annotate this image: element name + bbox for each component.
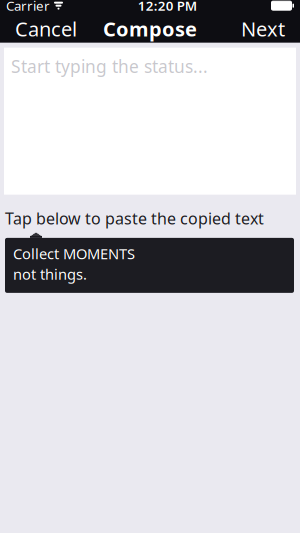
button[interactable]: Cancel — [5, 10, 87, 47]
staticText: Start typing the status... — [11, 55, 208, 78]
staticText: Next — [241, 15, 285, 42]
button[interactable]: Next — [231, 10, 295, 47]
staticText: Collect MOMENTS — [13, 244, 135, 263]
staticText: Carrier — [6, 0, 50, 14]
staticText: 12:20 PM — [138, 0, 197, 14]
staticText: Compose — [103, 15, 197, 42]
staticText: not things. — [13, 264, 87, 284]
staticText: Cancel — [15, 15, 77, 42]
button[interactable]: Collect MOMENTS — [5, 233, 294, 293]
staticText: Tap below to paste the copied text — [5, 208, 264, 229]
